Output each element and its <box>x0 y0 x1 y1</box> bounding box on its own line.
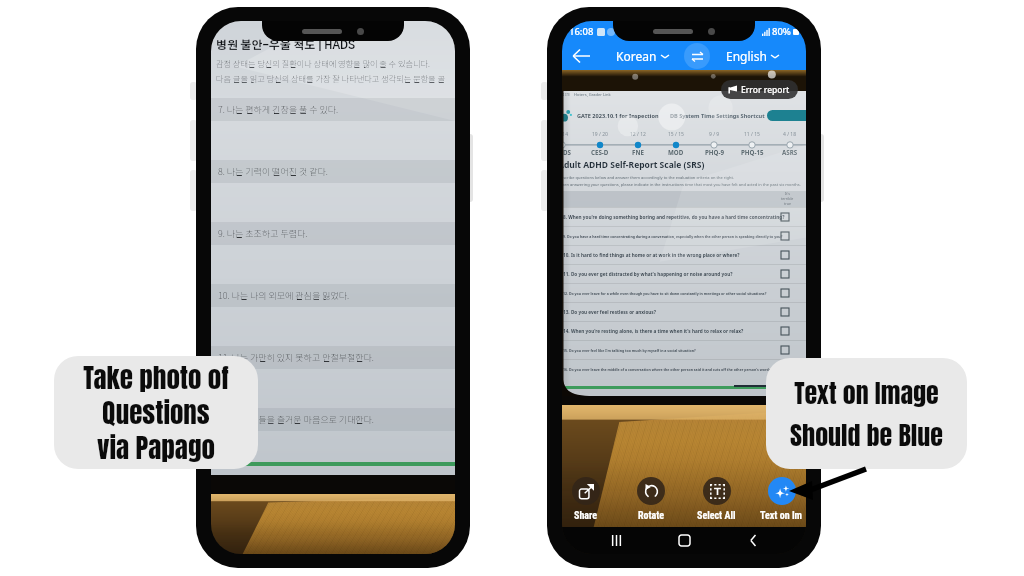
button[interactable]: Text on Im <box>758 477 805 522</box>
staticText: PHQ-15 <box>741 148 764 156</box>
staticText: Should be Blue <box>790 415 943 454</box>
staticText: 4 / 14 <box>562 131 569 138</box>
staticText: 8. When you're doing something boring an… <box>563 214 785 220</box>
staticText: 15 / 15 <box>668 131 684 138</box>
staticText: CES-D <box>591 148 609 156</box>
staticText: DB System Time Settings Shortcut <box>670 112 765 120</box>
staticText: 4 / 18 <box>783 131 797 138</box>
staticText: 다음 글을 읽고 당신의 상태를 가장 잘 나타낸다고 생각되는 문항을 골 <box>216 72 445 84</box>
staticText: 9. 나는 초조하고 두렵다. <box>218 227 308 240</box>
staticText: 11. 나는 가만히 있지 못하고 안절부절한다. <box>218 351 374 364</box>
staticText: 80% <box>772 25 791 38</box>
staticText: Rotate <box>638 510 665 522</box>
button[interactable]: Back <box>738 527 768 554</box>
button[interactable]: Take photo of <box>54 356 258 469</box>
button[interactable]: Korean <box>612 45 673 67</box>
staticText: 9. Do you have a hard time concentrating… <box>563 234 783 239</box>
staticText: Adult ADHD Self-Report Scale (SRS) <box>562 159 705 171</box>
staticText: Text on Image <box>794 373 939 412</box>
staticText: 4 I'll <box>562 92 570 97</box>
staticText: 9 / 9 <box>709 131 720 138</box>
staticText: 11 / 15 <box>744 131 760 138</box>
button[interactable]: Home <box>669 527 699 554</box>
staticText: 16. Do you ever leave the middle of a co… <box>563 367 806 372</box>
staticText: Questions <box>102 392 210 433</box>
staticText: Share <box>574 510 598 522</box>
staticText: When answering your questions, please in… <box>562 182 801 187</box>
staticText: 7. 나는 편하게 긴장을 풀 수 있다. <box>218 103 339 116</box>
button[interactable]: Select All <box>695 477 738 522</box>
staticText: 13. Do you ever feel restless or anxious… <box>563 309 656 315</box>
button[interactable]: Error report <box>721 80 798 99</box>
staticText: Text on Im <box>760 510 803 522</box>
staticText: terrible <box>781 196 794 201</box>
button[interactable]: Text on Image <box>766 358 967 469</box>
button[interactable]: Swap languages <box>684 43 710 69</box>
staticText: GATE 2023.10.1 for Inspection <box>577 112 659 120</box>
staticText: 감정 상태는 당신의 질환이나 상태에 영향을 많이 줄 수 있습니다. <box>216 57 430 69</box>
staticText: via Papago <box>97 427 215 468</box>
staticText: Select All <box>697 510 736 522</box>
button[interactable]: Recents <box>601 527 631 554</box>
staticText: 12. 나는 일들을 즐거운 마음으로 기대한다. <box>218 413 374 426</box>
staticText: 14. When you're resting alone, is there … <box>563 328 744 334</box>
button[interactable]: Back <box>562 42 600 70</box>
staticText: 15. Do you ever feel like I'm talking to… <box>563 348 696 353</box>
staticText: 16:08 <box>569 25 594 38</box>
staticText: Korean <box>616 48 657 64</box>
button[interactable]: Share <box>570 477 602 522</box>
staticText: true <box>784 201 792 206</box>
staticText: 8. 나는 기력이 떨어진 것 같다. <box>218 165 328 178</box>
staticText: HADS <box>562 148 571 156</box>
staticText: Take photo of <box>83 357 229 398</box>
staticText: 11. Do you ever get distracted by what's… <box>563 271 733 277</box>
staticText: 10. 나는 나의 외모에 관심을 잃었다. <box>218 289 350 302</box>
button[interactable]: English <box>722 45 783 67</box>
staticText: 10. Is it hard to find things at home or… <box>563 252 740 258</box>
staticText: PHQ-9 <box>705 148 724 156</box>
staticText: Hoters, Grader Link <box>574 92 611 97</box>
staticText: 19 / 20 <box>592 131 608 138</box>
staticText: 병원 불안-우울 척도 | HADS <box>216 40 355 51</box>
staticText: Error report <box>741 84 790 96</box>
button[interactable]: Rotate <box>635 477 667 522</box>
staticText: English <box>726 48 767 64</box>
staticText: MOD <box>668 148 684 156</box>
staticText: 12 / 12 <box>630 131 646 138</box>
staticText: ASRS <box>782 148 798 156</box>
staticText: FNE <box>632 148 644 156</box>
staticText: Describe questions below and answer them… <box>562 175 734 180</box>
staticText: 12. Do you ever leave for a while even t… <box>563 291 767 296</box>
staticText: It's <box>785 191 791 196</box>
